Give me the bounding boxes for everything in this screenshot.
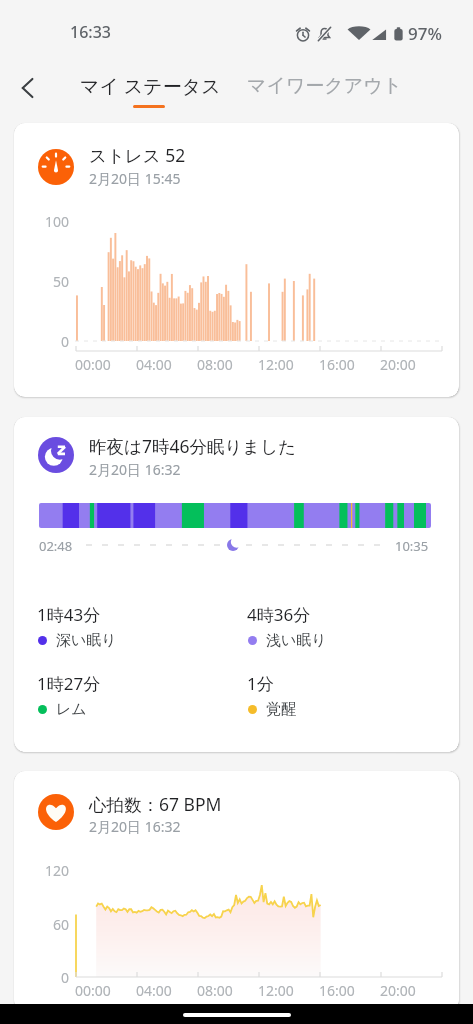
staticText: 02:48 bbox=[39, 537, 73, 555]
staticText: 1分 bbox=[247, 672, 274, 695]
staticText: 浅い眠り bbox=[266, 631, 327, 650]
staticText: 1時27分 bbox=[37, 672, 101, 695]
staticText: 20:00 bbox=[380, 981, 416, 1000]
staticText: 60 bbox=[53, 915, 70, 934]
staticText: マイワークアウト bbox=[247, 74, 403, 98]
staticText: 00:00 bbox=[75, 355, 111, 374]
staticText: 08:00 bbox=[197, 355, 233, 374]
staticText: 16:00 bbox=[319, 355, 355, 374]
staticText: 20:00 bbox=[380, 355, 416, 374]
staticText: 16:00 bbox=[319, 981, 355, 1000]
staticText: 1時43分 bbox=[37, 603, 101, 626]
staticText: 0 bbox=[61, 968, 70, 987]
staticText: 12:00 bbox=[258, 355, 294, 374]
staticText: 覚醒 bbox=[266, 700, 296, 719]
staticText: 00:00 bbox=[75, 981, 111, 1000]
staticText: 心拍数：67 BPM bbox=[89, 792, 222, 816]
staticText: 04:00 bbox=[136, 981, 172, 1000]
staticText: 08:00 bbox=[197, 981, 233, 1000]
staticText: 4時36分 bbox=[247, 603, 311, 626]
staticText: 04:00 bbox=[136, 355, 172, 374]
staticText: 深い眠り bbox=[56, 631, 117, 650]
staticText: 16:33 bbox=[70, 21, 111, 43]
staticText: 2月20日 16:32 bbox=[89, 460, 181, 479]
staticText: 97% bbox=[408, 22, 442, 45]
staticText: 2月20日 16:32 bbox=[89, 817, 181, 836]
staticText: 50 bbox=[53, 272, 70, 291]
button[interactable]: 心拍数：67 BPM bbox=[14, 771, 459, 1011]
staticText: ストレス 52 bbox=[89, 143, 186, 167]
button[interactable]: ストレス 52 bbox=[14, 123, 459, 397]
staticText: 12:00 bbox=[258, 981, 294, 1000]
staticText: 10:35 bbox=[395, 537, 429, 555]
staticText: 昨夜は7時46分眠りました bbox=[89, 434, 297, 458]
button[interactable]: マイワークアウト bbox=[235, 68, 415, 104]
button[interactable]: 昨夜は7時46分眠りました bbox=[14, 417, 459, 752]
button[interactable]: マイ ステータス bbox=[68, 67, 233, 105]
button[interactable]: Back bbox=[9, 69, 47, 107]
staticText: 100 bbox=[45, 212, 70, 231]
staticText: 0 bbox=[61, 332, 70, 351]
staticText: 2月20日 15:45 bbox=[89, 169, 181, 188]
staticText: レム bbox=[56, 700, 87, 719]
staticText: マイ ステータス bbox=[80, 73, 221, 99]
staticText: 120 bbox=[45, 861, 70, 880]
